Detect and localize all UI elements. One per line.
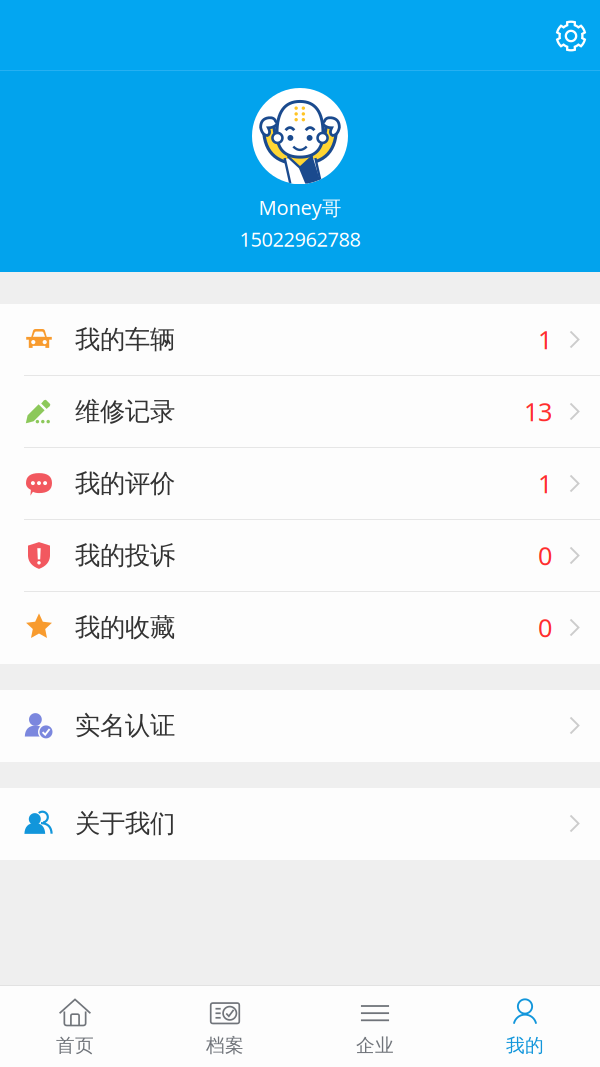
staticText: 企业 [356, 1034, 394, 1057]
staticText: 我的评价 [75, 468, 175, 499]
staticText: 首页 [56, 1034, 94, 1057]
button[interactable]: 首页 [0, 986, 150, 1067]
button[interactable]: 我的投诉 [0, 520, 600, 592]
staticText: 维修记录 [75, 396, 175, 427]
button[interactable]: 维修记录 [0, 376, 600, 448]
staticText: 关于我们 [75, 808, 175, 839]
staticText: 实名认证 [75, 710, 175, 741]
button[interactable]: 我的收藏 [0, 592, 600, 664]
button[interactable]: Settings [545, 10, 597, 62]
staticText: 我的收藏 [75, 612, 175, 643]
staticText: 15022962788 [239, 226, 360, 252]
staticText: 1 [538, 323, 552, 356]
staticText: 1 [538, 467, 552, 500]
staticText: 我的 [506, 1034, 544, 1057]
staticText: 0 [538, 539, 552, 572]
staticText: 我的车辆 [75, 324, 175, 355]
button[interactable]: 我的车辆 [0, 304, 600, 376]
button[interactable]: 我的评价 [0, 448, 600, 520]
staticText: 档案 [206, 1034, 244, 1057]
button[interactable]: 企业 [300, 986, 450, 1067]
staticText: 13 [524, 395, 552, 428]
staticText: Money哥 [258, 194, 341, 221]
button[interactable]: 我的 [450, 986, 600, 1067]
button[interactable]: 实名认证 [0, 690, 600, 762]
staticText: 0 [538, 611, 552, 644]
button[interactable]: 关于我们 [0, 788, 600, 860]
staticText: 我的投诉 [75, 540, 175, 571]
button[interactable]: 档案 [150, 986, 300, 1067]
